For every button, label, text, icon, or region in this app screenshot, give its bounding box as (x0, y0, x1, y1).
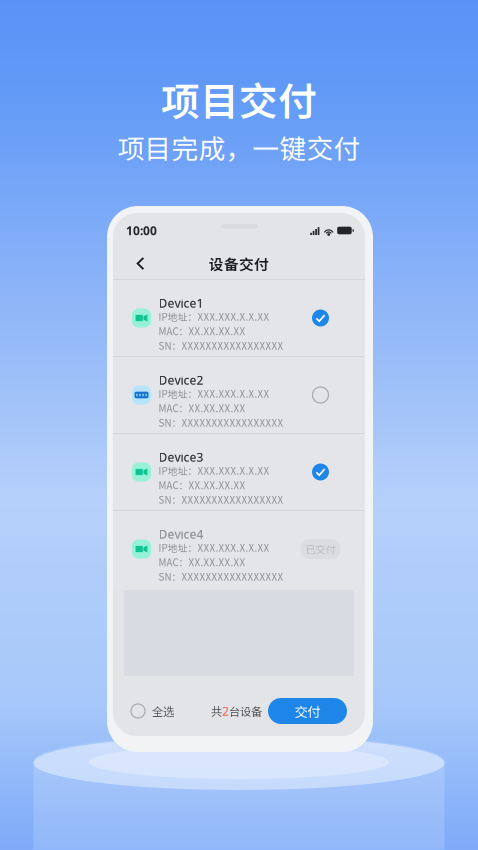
staticText: MAC：XX.XX.XX.XX (158, 478, 245, 492)
staticText: Device2 (158, 372, 203, 388)
staticText: IP地址：XXX.XXX.X.X.XX (158, 386, 269, 400)
staticText: 已交付 (305, 542, 335, 556)
button[interactable]: 返回 (127, 249, 154, 277)
staticText: SN：XXXXXXXXXXXXXXXXX (158, 339, 283, 353)
staticText: Device3 (158, 449, 203, 465)
staticText: IP地址：XXX.XXX.X.X.XX (158, 540, 269, 554)
staticText: 2 (222, 703, 229, 719)
staticText: MAC：XX.XX.XX.XX (158, 324, 245, 338)
staticText: MAC：XX.XX.XX.XX (158, 401, 245, 415)
button[interactable]: Device1 (113, 280, 365, 356)
staticText: IP地址：XXX.XXX.X.X.XX (158, 463, 269, 477)
staticText: 设备交付 (209, 253, 269, 274)
staticText: 共 (211, 703, 222, 719)
button[interactable]: Device2 (113, 357, 365, 433)
staticText: Device1 (158, 295, 203, 311)
staticText: 全选 (152, 703, 174, 719)
staticText: 10:00 (126, 222, 157, 238)
button[interactable]: Device3 (113, 434, 365, 510)
staticText: SN：XXXXXXXXXXXXXXXXX (158, 570, 283, 584)
staticText: 台设备 (229, 703, 262, 719)
staticText: 交付 (294, 701, 320, 721)
button[interactable]: 交付 (268, 698, 347, 724)
staticText: IP地址：XXX.XXX.X.X.XX (158, 309, 269, 323)
staticText: MAC：XX.XX.XX.XX (158, 555, 245, 569)
staticText: Device4 (158, 526, 203, 542)
button[interactable]: 全选 (113, 693, 174, 729)
staticText: 项目交付 (161, 71, 317, 127)
staticText: 项目完成，一键交付 (117, 128, 360, 166)
staticText: SN：XXXXXXXXXXXXXXXXX (158, 493, 283, 507)
staticText: SN：XXXXXXXXXXXXXXXXX (158, 416, 283, 430)
button[interactable]: Device4 (113, 511, 365, 587)
